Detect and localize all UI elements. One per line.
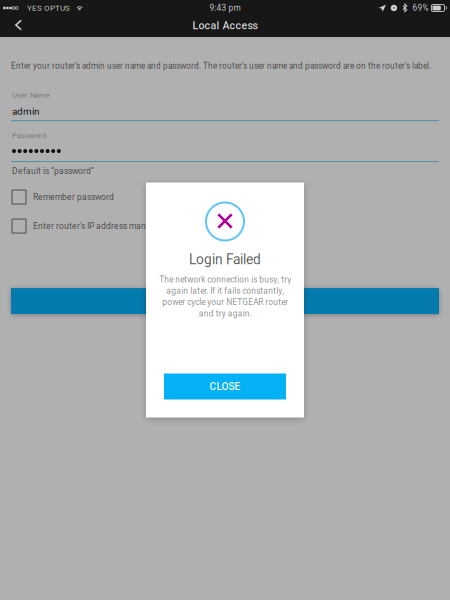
staticText: Password bbox=[12, 131, 46, 140]
staticText: admin bbox=[12, 106, 39, 117]
staticText: Enter router's IP address manually bbox=[33, 221, 164, 231]
staticText: YES OPTUS bbox=[27, 3, 70, 13]
staticText: Local Access bbox=[192, 19, 257, 32]
staticText: Remember password bbox=[33, 192, 114, 202]
button[interactable] bbox=[0, 288, 450, 314]
staticText: 69% bbox=[412, 3, 428, 13]
staticText: Enter your router's admin user name and … bbox=[11, 61, 431, 71]
staticText: 9:43 pm bbox=[209, 3, 240, 13]
staticText: Login Failed bbox=[189, 251, 261, 268]
button[interactable]: Enter router's IP address manually bbox=[0, 219, 450, 233]
staticText: Default is “password” bbox=[12, 166, 94, 176]
button[interactable]: CLOSE bbox=[164, 373, 286, 399]
button[interactable]: Back bbox=[0, 16, 37, 37]
staticText: The network connection is busy, try agai… bbox=[159, 275, 291, 318]
staticText: User Name bbox=[12, 91, 50, 100]
button[interactable]: Remember password bbox=[0, 190, 450, 204]
staticText: CLOSE bbox=[209, 381, 240, 392]
